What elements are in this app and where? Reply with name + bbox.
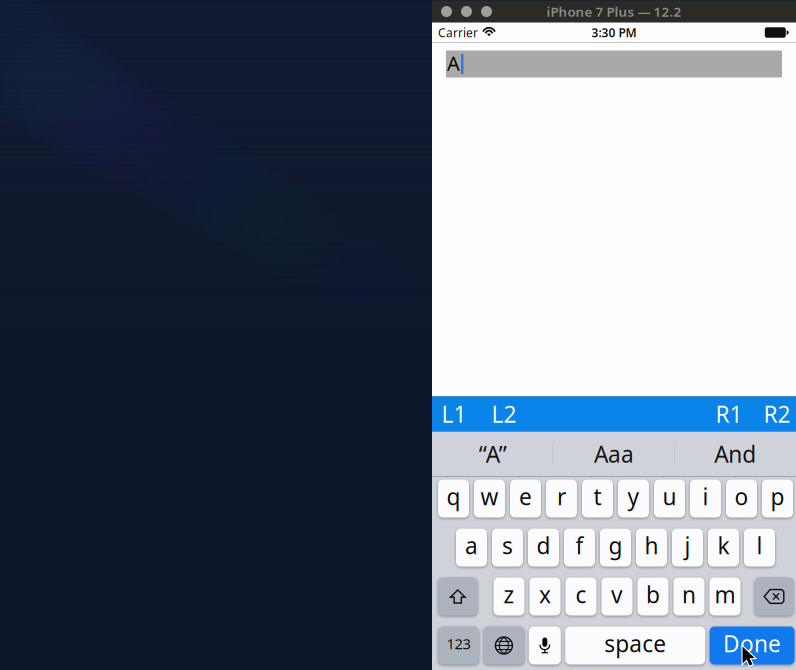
staticText: y <box>627 481 639 511</box>
staticText: o <box>734 481 748 511</box>
staticText: A <box>447 50 460 76</box>
button[interactable]: g <box>600 528 631 566</box>
button[interactable]: Next keyboard <box>483 626 524 664</box>
staticText: space <box>604 628 666 658</box>
button[interactable]: n <box>673 577 704 615</box>
staticText: “A” <box>479 439 507 469</box>
staticText: n <box>682 579 696 609</box>
button[interactable]: o <box>726 479 757 517</box>
button[interactable]: i <box>690 479 721 517</box>
button[interactable]: p <box>762 479 793 517</box>
button[interactable]: Aaa <box>553 431 675 476</box>
button[interactable]: Shift <box>438 577 477 615</box>
button[interactable]: L2 <box>488 396 520 431</box>
staticText: c <box>575 579 586 609</box>
staticText: d <box>536 530 550 560</box>
staticText: z <box>503 579 514 609</box>
staticText: l <box>756 530 762 560</box>
staticText: Carrier <box>438 24 478 40</box>
staticText: R2 <box>763 399 790 429</box>
button[interactable]: z <box>493 577 524 615</box>
button[interactable]: Done <box>710 626 795 664</box>
button[interactable]: Zoom <box>481 6 492 17</box>
button[interactable]: a <box>456 528 487 566</box>
button[interactable]: Minimize <box>461 6 472 17</box>
staticText: 123 <box>446 634 470 653</box>
button[interactable]: k <box>708 528 739 566</box>
button[interactable]: Close <box>441 6 452 17</box>
button[interactable]: c <box>565 577 596 615</box>
button[interactable]: t <box>582 479 613 517</box>
staticText: i <box>702 481 708 511</box>
button[interactable]: L1 <box>438 396 470 431</box>
staticText: k <box>717 530 729 560</box>
staticText: x <box>539 579 551 609</box>
button[interactable]: q <box>438 479 469 517</box>
button[interactable]: space <box>565 626 705 664</box>
staticText: g <box>608 530 622 560</box>
button[interactable]: And <box>675 431 796 476</box>
staticText: p <box>770 481 784 511</box>
button[interactable]: “A” <box>432 431 553 476</box>
button[interactable]: m <box>709 577 740 615</box>
staticText: e <box>519 481 532 511</box>
staticText: w <box>480 481 498 511</box>
staticText: m <box>714 579 735 609</box>
staticText: And <box>714 439 756 469</box>
staticText: q <box>446 481 460 511</box>
button[interactable]: R1 <box>713 396 745 431</box>
button[interactable]: h <box>636 528 667 566</box>
button[interactable]: s <box>492 528 523 566</box>
staticText: r <box>557 481 566 511</box>
staticText: L2 <box>491 399 516 429</box>
button[interactable]: Delete <box>754 577 793 615</box>
staticText: b <box>646 579 660 609</box>
button[interactable]: x <box>529 577 560 615</box>
button[interactable]: v <box>601 577 632 615</box>
staticText: f <box>575 530 583 560</box>
button[interactable]: A <box>446 50 782 77</box>
staticText: a <box>465 530 478 560</box>
staticText: v <box>611 579 623 609</box>
staticText: R1 <box>715 399 742 429</box>
button[interactable]: r <box>546 479 577 517</box>
button[interactable]: l <box>744 528 775 566</box>
staticText: j <box>684 530 690 560</box>
staticText: h <box>644 530 658 560</box>
staticText: Done <box>723 628 781 658</box>
button[interactable]: e <box>510 479 541 517</box>
button[interactable]: d <box>528 528 559 566</box>
button[interactable]: R2 <box>761 396 793 431</box>
staticText: 3:30 PM <box>591 24 636 40</box>
button[interactable]: w <box>474 479 505 517</box>
staticText: iPhone 7 Plus — 12.2 <box>546 3 681 20</box>
button[interactable]: u <box>654 479 685 517</box>
staticText: t <box>593 481 601 511</box>
button[interactable]: Dictation <box>529 626 561 664</box>
staticText: Aaa <box>594 439 634 469</box>
staticText: u <box>662 481 676 511</box>
staticText: s <box>502 530 513 560</box>
button[interactable]: 123 <box>438 626 479 664</box>
button[interactable]: b <box>637 577 668 615</box>
button[interactable]: f <box>564 528 595 566</box>
button[interactable]: j <box>672 528 703 566</box>
button[interactable]: y <box>618 479 649 517</box>
staticText: L1 <box>441 399 466 429</box>
